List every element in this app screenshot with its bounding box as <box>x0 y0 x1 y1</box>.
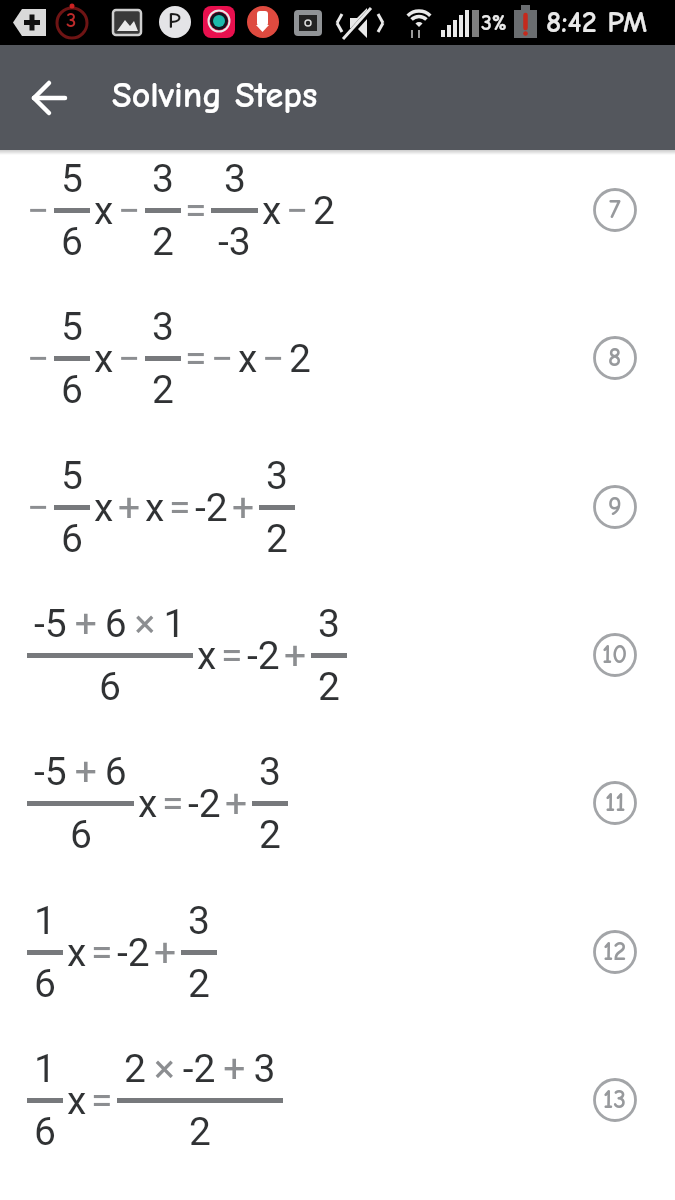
staticText: 6 <box>34 961 56 1007</box>
staticText: 2 <box>318 664 340 710</box>
staticText: 3 <box>224 156 246 202</box>
staticText: 6 <box>99 664 121 710</box>
staticText: 9 <box>608 492 622 522</box>
staticText: 2 <box>188 961 210 1007</box>
staticText: − <box>211 336 234 382</box>
staticText: 6 <box>70 812 92 858</box>
staticText: = <box>169 485 191 531</box>
staticText: x <box>67 1078 87 1124</box>
staticText: = <box>221 633 243 679</box>
staticText: 5 <box>61 156 83 202</box>
staticText: 3 <box>266 453 288 499</box>
staticText: P <box>168 7 181 33</box>
button[interactable]: 1 <box>0 878 675 1026</box>
staticText: = <box>91 1078 113 1124</box>
button[interactable]: 1 <box>0 1026 675 1174</box>
staticText: 1 <box>34 1046 56 1092</box>
button[interactable]: − <box>0 433 675 581</box>
button[interactable]: -5 + 6 × 1 <box>0 581 675 729</box>
staticText: 2 <box>152 219 174 265</box>
staticText: -2 <box>188 781 221 827</box>
button[interactable]: 8 <box>593 336 637 380</box>
staticText: -2 <box>117 930 150 976</box>
staticText: 5 <box>61 453 83 499</box>
staticText: + <box>284 633 307 679</box>
staticText: + <box>232 485 255 531</box>
staticText: 2 <box>259 812 281 858</box>
staticText: -3 <box>218 219 251 265</box>
staticText: 2 <box>266 516 288 562</box>
staticText: − <box>118 188 141 234</box>
staticText: 6 <box>61 367 83 413</box>
staticText: -2 <box>247 633 280 679</box>
staticText: 2 <box>152 367 174 413</box>
staticText: 7 <box>609 195 621 225</box>
staticText: 6 <box>34 1109 56 1155</box>
staticText: x <box>197 633 217 679</box>
staticText: x <box>94 336 114 382</box>
staticText: = <box>162 781 184 827</box>
staticText: − <box>262 336 285 382</box>
button[interactable]: 11 <box>593 781 637 825</box>
staticText: − <box>27 485 50 531</box>
staticText: Solving Steps <box>112 75 318 116</box>
button[interactable]: 9 <box>593 485 637 529</box>
button[interactable]: − <box>0 284 675 432</box>
staticText: − <box>27 188 50 234</box>
staticText: 3 <box>152 304 174 350</box>
staticText: 3 <box>66 8 77 32</box>
staticText: -5 + 6 × 1 <box>34 601 186 647</box>
staticText: 12 <box>603 937 627 967</box>
staticText: = <box>91 930 113 976</box>
button[interactable]: 12 <box>593 930 637 974</box>
staticText: 2 <box>189 1109 211 1155</box>
staticText: 2 <box>289 336 311 382</box>
staticText: 8:42 PM <box>546 5 648 40</box>
staticText: 11 <box>605 788 626 818</box>
staticText: + <box>154 930 177 976</box>
staticText: 5 <box>61 304 83 350</box>
staticText: 2 × -2 + 3 <box>124 1046 276 1092</box>
staticText: 10 <box>602 640 628 670</box>
staticText: 6 <box>61 516 83 562</box>
staticText: 3 <box>318 601 340 647</box>
staticText: 1 <box>34 898 56 944</box>
staticText: 8 <box>608 343 622 373</box>
staticText: + <box>225 781 248 827</box>
staticText: x <box>138 781 158 827</box>
staticText: − <box>286 188 309 234</box>
staticText: = <box>185 336 207 382</box>
staticText: -5 + 6 <box>34 749 127 795</box>
button[interactable]: 13 <box>593 1078 637 1122</box>
staticText: = <box>185 188 207 234</box>
staticText: 3% <box>481 10 507 35</box>
staticText: x <box>94 188 114 234</box>
staticText: 3 <box>152 156 174 202</box>
staticText: x <box>238 336 258 382</box>
staticText: x <box>145 485 165 531</box>
staticText: 13 <box>603 1085 627 1115</box>
button[interactable]: 10 <box>593 633 637 677</box>
button[interactable]: − <box>0 136 675 284</box>
staticText: 3 <box>188 898 210 944</box>
staticText: x <box>262 188 282 234</box>
button[interactable]: 7 <box>593 188 637 232</box>
staticText: 6 <box>61 219 83 265</box>
button[interactable]: -5 + 6 <box>0 729 675 877</box>
staticText: 2 <box>313 188 335 234</box>
staticText: − <box>27 336 50 382</box>
staticText: x <box>94 485 114 531</box>
staticText: 3 <box>259 749 281 795</box>
staticText: -2 <box>195 485 228 531</box>
staticText: + <box>118 485 141 531</box>
staticText: x <box>67 930 87 976</box>
staticText: − <box>118 336 141 382</box>
button[interactable] <box>20 68 80 128</box>
